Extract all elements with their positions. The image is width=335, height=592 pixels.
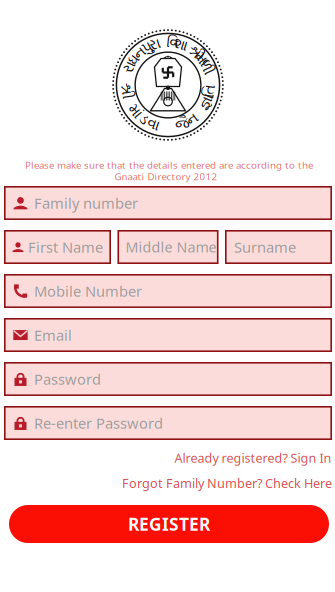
staticText: ન <box>187 112 198 127</box>
button[interactable]: REGISTER <box>9 505 329 543</box>
button[interactable]: Email <box>4 318 332 352</box>
staticText: Already registered? Sign In <box>174 449 331 467</box>
staticText: વિ <box>166 36 178 50</box>
staticText: ન <box>135 46 146 61</box>
staticText <box>199 102 203 121</box>
staticText: Forgot Family Number? Check Here <box>122 474 332 492</box>
staticText: Email <box>34 325 72 345</box>
staticText <box>162 33 166 53</box>
button[interactable]: Mobile Number <box>4 274 332 308</box>
button[interactable]: Middle Name <box>117 230 218 264</box>
staticText: વા <box>147 117 160 132</box>
button[interactable]: Surname <box>225 230 332 264</box>
staticText: મા <box>195 52 209 67</box>
staticText: જૈ <box>175 117 189 132</box>
staticText: Middle Name <box>125 237 216 257</box>
button[interactable]: Family number <box>4 186 332 220</box>
staticText: First Name <box>28 237 103 257</box>
staticText: પુ <box>143 41 152 55</box>
staticText: ળી <box>199 60 214 74</box>
staticText: Re-enter Password <box>34 413 163 433</box>
staticText: તિ <box>203 84 216 98</box>
button[interactable]: Forgot Family Number? Check Here <box>122 471 332 495</box>
staticText: REGISTER <box>128 512 210 536</box>
button[interactable]: Already registered? Sign In <box>174 446 331 470</box>
staticText: શ્રી <box>118 84 134 98</box>
staticText: જ્ઞા <box>198 94 215 109</box>
staticText: રા <box>149 37 161 52</box>
button[interactable]: Password <box>4 362 332 396</box>
button[interactable]: Re-enter Password <box>4 406 332 440</box>
staticText: રા <box>124 60 136 74</box>
staticText: Surname <box>234 237 296 257</box>
staticText: શ્રી <box>188 46 204 61</box>
staticText: Gnaati Directory 2012 <box>114 170 217 183</box>
button[interactable]: First Name <box>4 230 111 264</box>
staticText: Please make sure that the details entere… <box>25 158 313 172</box>
staticText: ડ <box>139 112 147 127</box>
staticText: Mobile Number <box>34 281 142 301</box>
staticText: Password <box>34 369 101 389</box>
staticText <box>127 92 131 112</box>
staticText: Family number <box>34 193 138 213</box>
staticText: ધ <box>130 52 139 67</box>
staticText: શા <box>173 37 188 52</box>
staticText: માં <box>128 104 142 119</box>
staticText <box>187 38 191 58</box>
